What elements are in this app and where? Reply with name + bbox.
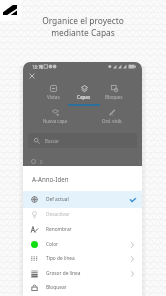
staticText: Capas xyxy=(77,94,91,100)
staticText: A-Anno-Iden xyxy=(32,175,69,183)
staticText: Organice el proyecto xyxy=(42,15,124,26)
staticText: Nueva capa xyxy=(43,118,68,124)
staticText: Tipo de línea xyxy=(46,255,75,262)
staticText: Grosor de línea xyxy=(46,270,81,277)
staticText: Vistas xyxy=(47,94,60,100)
button[interactable]: Grosor de línea xyxy=(23,266,142,281)
button[interactable]: Ord. visib. xyxy=(90,108,134,124)
staticText: mediante Capas xyxy=(51,27,115,38)
button[interactable]: App logo xyxy=(0,0,21,21)
button[interactable]: Desactivar xyxy=(23,207,142,222)
staticText: 0 xyxy=(40,159,43,165)
button[interactable]: Capas xyxy=(69,83,99,105)
button[interactable]: Bloques xyxy=(99,83,129,105)
staticText: Desactivar xyxy=(46,211,70,218)
button[interactable]: Def actual xyxy=(23,191,142,208)
button[interactable]: Vistas xyxy=(38,83,68,105)
staticText: ⋮ xyxy=(137,159,142,165)
button[interactable]: Bloquear xyxy=(23,280,142,295)
button[interactable]: Tipo de línea xyxy=(23,251,142,266)
staticText: Color xyxy=(46,241,59,248)
staticText: Bloquear xyxy=(46,284,67,291)
staticText: Ord. visib. xyxy=(102,118,123,124)
button[interactable]: Close xyxy=(28,72,36,80)
staticText: 18:12 xyxy=(32,64,44,70)
button[interactable]: Color xyxy=(23,237,142,252)
button[interactable]: Renombrar xyxy=(23,222,142,237)
staticText: Buscar xyxy=(45,138,60,144)
staticText: Bloques xyxy=(105,94,123,100)
staticText: Def actual xyxy=(46,196,69,203)
staticText: Renombrar xyxy=(46,226,72,233)
button[interactable]: Nueva capa xyxy=(33,108,77,124)
button[interactable]: Buscar xyxy=(28,133,137,148)
